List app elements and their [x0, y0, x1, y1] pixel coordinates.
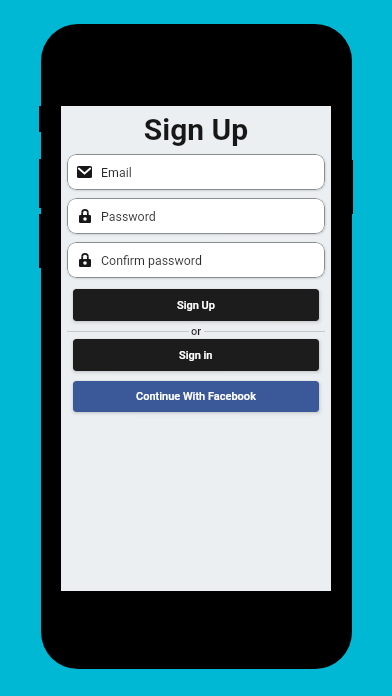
staticText: Email [101, 165, 132, 180]
other: Password [79, 209, 91, 223]
staticText: Password [101, 209, 156, 224]
staticText: Sign Up [177, 299, 215, 312]
button[interactable]: Sign in [73, 339, 319, 371]
staticText: Continue With Facebook [136, 390, 256, 403]
other: Email [77, 166, 92, 178]
button[interactable]: Password [67, 198, 325, 234]
button[interactable]: Continue With Facebook [73, 381, 319, 412]
button[interactable]: Sign Up [73, 289, 319, 321]
staticText: Sign Up [61, 112, 331, 147]
staticText: or [191, 325, 202, 338]
staticText: Confirm password [101, 253, 202, 268]
other: Password [79, 253, 91, 267]
staticText: Sign in [179, 349, 213, 362]
button[interactable]: Email [67, 154, 325, 190]
button[interactable]: Password [67, 242, 325, 278]
